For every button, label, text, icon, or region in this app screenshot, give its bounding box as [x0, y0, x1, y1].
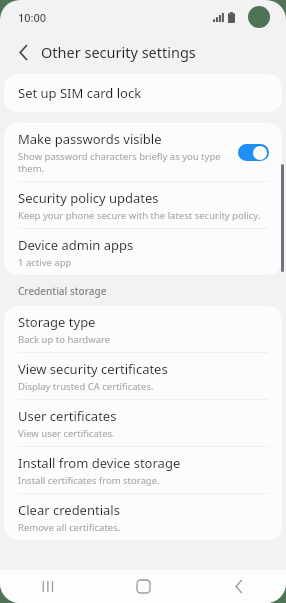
staticText: View security certificates	[18, 360, 168, 378]
staticText: Clear credentials	[18, 501, 120, 519]
button[interactable]: User certificates	[4, 400, 282, 447]
button[interactable]: Set up SIM card lock	[4, 74, 282, 112]
staticText: Other security settings	[41, 42, 196, 62]
staticText: 10:00	[18, 10, 47, 25]
button[interactable]: Install from device storage	[4, 447, 282, 494]
button[interactable]: Security policy updates	[4, 182, 282, 229]
staticText: Keep your phone secure with the latest s…	[18, 209, 261, 222]
staticText: Security policy updates	[18, 189, 159, 207]
staticText: Device admin apps	[18, 236, 134, 254]
staticText: Storage type	[18, 313, 96, 331]
button[interactable]: Make passwords visible	[238, 144, 269, 161]
staticText: Display trusted CA certificates.	[18, 380, 154, 393]
staticText: View user certificates.	[18, 427, 115, 440]
staticText: Show password characters briefly as you …	[18, 150, 232, 175]
button[interactable]: View security certificates	[4, 353, 282, 400]
button[interactable]: Recent apps	[0, 570, 96, 603]
button[interactable]: Clear credentials	[4, 494, 282, 540]
staticText: Install certificates from storage.	[18, 474, 160, 487]
staticText: Set up SIM card lock	[18, 84, 142, 102]
staticText: Remove all certificates.	[18, 521, 121, 534]
staticText: Install from device storage	[18, 454, 181, 472]
staticText: 1 active app	[18, 256, 72, 269]
button[interactable]: Device admin apps	[4, 229, 282, 275]
button[interactable]: Back	[11, 39, 37, 65]
button[interactable]: Back	[191, 570, 286, 603]
staticText: User certificates	[18, 407, 117, 425]
staticText: Make passwords visible	[18, 130, 162, 148]
button[interactable]: Home	[96, 570, 191, 603]
staticText: Back up to hardware	[18, 333, 111, 346]
button[interactable]: Make passwords visible	[4, 123, 282, 182]
button[interactable]: Storage type	[4, 306, 282, 353]
staticText: Credential storage	[18, 284, 107, 298]
